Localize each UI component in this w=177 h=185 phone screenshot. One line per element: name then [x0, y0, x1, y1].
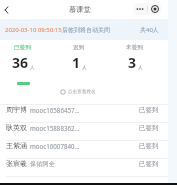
button[interactable]: 张宸羲 [0, 159, 168, 177]
staticText: 保佑阿全 [30, 160, 55, 168]
staticText: 人 [138, 65, 143, 71]
staticText: 已签到 [139, 124, 159, 132]
staticText: 慕课堂 [69, 5, 91, 14]
staticText: 人 [30, 65, 35, 71]
button[interactable]: More [133, 3, 147, 15]
button[interactable]: 点击查看姓名 [60, 89, 96, 95]
staticText: 已签到 [14, 44, 32, 51]
staticText: 后签到将自动关闭 [62, 26, 110, 34]
staticText: mooc16007840... [30, 142, 80, 150]
button[interactable]: Back [1, 3, 15, 17]
button[interactable]: 耿英双 [0, 123, 168, 141]
staticText: 已签到 [139, 160, 159, 168]
staticText: 周宇博 [6, 105, 27, 114]
staticText: 王紫涵 [6, 141, 27, 150]
staticText: 共40人 [140, 26, 159, 34]
staticText: 未签到 [126, 44, 144, 51]
button[interactable]: 王紫涵 [0, 141, 168, 159]
staticText: 点击查看姓名 [68, 89, 96, 95]
staticText: 36 [12, 53, 29, 72]
staticText: 2020-03-10 09:50:15 [5, 26, 62, 34]
staticText: 张宸羲 [6, 159, 27, 168]
button[interactable]: Close [148, 3, 162, 15]
staticText: mooc16586457... [30, 106, 80, 114]
staticText: 3 [128, 53, 137, 72]
staticText: 迟到 [73, 44, 85, 51]
staticText: 已签到 [139, 106, 159, 114]
staticText: 人 [82, 65, 87, 71]
staticText: 耿英双 [6, 123, 27, 132]
staticText: mooc15888362... [30, 124, 80, 132]
button[interactable]: 周宇博 [0, 105, 168, 123]
button[interactable]: 未签到 [107, 40, 163, 85]
button[interactable]: 迟到 [51, 40, 107, 85]
button[interactable]: 已签到 [0, 40, 51, 85]
staticText: 已签到 [139, 142, 159, 150]
staticText: 1 [72, 53, 81, 72]
